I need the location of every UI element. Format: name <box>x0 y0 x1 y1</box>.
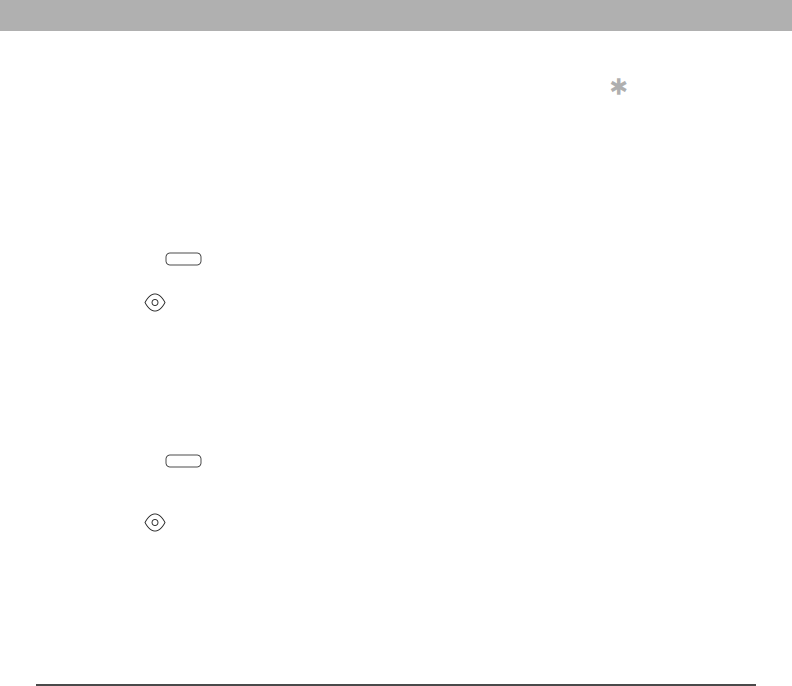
staticText: Message from Claude <box>145 277 379 307</box>
button[interactable]: Message group 2 <box>145 455 745 515</box>
staticText: ‹ <box>21 30 32 76</box>
staticText: ✱ <box>609 74 628 100</box>
button[interactable]: Message group 1 <box>145 253 745 313</box>
button[interactable]: Model picker <box>609 74 628 100</box>
